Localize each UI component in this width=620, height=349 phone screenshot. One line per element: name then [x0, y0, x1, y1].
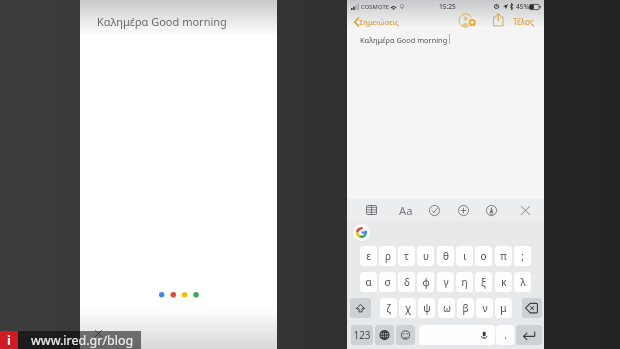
- button[interactable]: Google: [353, 224, 370, 241]
- staticText: λ: [520, 275, 526, 289]
- button[interactable]: γ: [437, 272, 454, 292]
- button[interactable]: κ: [495, 272, 512, 292]
- button[interactable]: 123: [351, 325, 373, 345]
- staticText: ρ: [385, 249, 391, 263]
- button[interactable]: Τέλος: [509, 14, 538, 29]
- button[interactable]: Σημειώσεις: [354, 14, 399, 29]
- staticText: Καλημέρα Good morning: [97, 14, 227, 29]
- button[interactable]: τ: [398, 246, 415, 266]
- button[interactable]: Enter: [516, 325, 542, 345]
- staticText: 123: [353, 328, 371, 342]
- staticText: ο: [480, 249, 487, 263]
- staticText: τ: [404, 249, 409, 263]
- staticText: μ: [500, 301, 507, 315]
- staticText: 15:25: [439, 2, 456, 11]
- staticText: κ: [501, 275, 507, 289]
- staticText: COSMOTE: [361, 3, 390, 11]
- staticText: ε: [366, 249, 371, 263]
- staticText: β: [462, 301, 469, 315]
- button[interactable]: δ: [398, 272, 415, 292]
- staticText: i: [7, 331, 11, 349]
- staticText: δ: [404, 275, 410, 289]
- staticText: ζ: [386, 301, 391, 315]
- staticText: υ: [423, 249, 429, 263]
- button[interactable]: υ: [417, 246, 434, 266]
- staticText: φ: [422, 275, 430, 289]
- button[interactable]: ι: [456, 246, 473, 266]
- staticText: Aa: [399, 203, 413, 218]
- staticText: σ: [384, 275, 391, 289]
- staticText: α: [365, 275, 372, 289]
- button[interactable]: Aa: [398, 199, 414, 221]
- button[interactable]: ο: [475, 246, 492, 266]
- button[interactable]: μ: [495, 298, 512, 318]
- staticText: .: [504, 328, 507, 342]
- staticText: www.ired.gr/blog: [31, 332, 134, 349]
- staticText: η: [461, 275, 468, 289]
- staticText: θ: [443, 249, 449, 263]
- staticText: γ: [443, 275, 449, 289]
- button[interactable]: ξ: [475, 272, 492, 292]
- button[interactable]: ε: [360, 246, 377, 266]
- button[interactable]: Space: [419, 325, 495, 345]
- button[interactable]: π: [495, 246, 512, 266]
- button[interactable]: σ: [379, 272, 396, 292]
- button[interactable]: Change keyboard: [375, 325, 394, 345]
- staticText: Σημειώσεις: [359, 17, 399, 27]
- button[interactable]: Backspace: [522, 298, 542, 318]
- staticText: π: [500, 249, 507, 263]
- button[interactable]: ψ: [418, 298, 435, 318]
- button[interactable]: Share: [490, 14, 506, 29]
- button[interactable]: ζ: [380, 298, 397, 318]
- staticText: χ: [405, 301, 411, 315]
- staticText: Τέλος: [513, 16, 534, 27]
- staticText: ι: [463, 249, 467, 263]
- button[interactable]: λ: [514, 272, 531, 292]
- staticText: ξ: [481, 275, 486, 289]
- staticText: Καλημέρα Good morning: [360, 35, 448, 45]
- button[interactable]: .: [496, 325, 514, 345]
- button[interactable]: β: [457, 298, 474, 318]
- button[interactable]: ;: [514, 246, 531, 266]
- button[interactable]: χ: [399, 298, 416, 318]
- button[interactable]: Checklist: [426, 199, 443, 221]
- button[interactable]: θ: [437, 246, 454, 266]
- button[interactable]: Markup: [483, 199, 500, 221]
- button[interactable]: ρ: [379, 246, 396, 266]
- button[interactable]: Shift: [350, 298, 371, 318]
- button[interactable]: Add people: [456, 14, 479, 29]
- button[interactable]: φ: [417, 272, 434, 292]
- button[interactable]: Table: [360, 199, 382, 221]
- staticText: ψ: [423, 301, 431, 315]
- button[interactable]: α: [360, 272, 377, 292]
- staticText: 45%: [516, 2, 530, 11]
- button[interactable]: η: [456, 272, 473, 292]
- button[interactable]: Emoji: [396, 325, 415, 345]
- button[interactable]: ω: [438, 298, 455, 318]
- staticText: ν: [482, 301, 488, 315]
- staticText: ;: [521, 249, 524, 263]
- button[interactable]: ν: [476, 298, 493, 318]
- staticText: ω: [443, 301, 451, 315]
- button[interactable]: Close: [517, 199, 534, 221]
- button[interactable]: Add: [455, 199, 472, 221]
